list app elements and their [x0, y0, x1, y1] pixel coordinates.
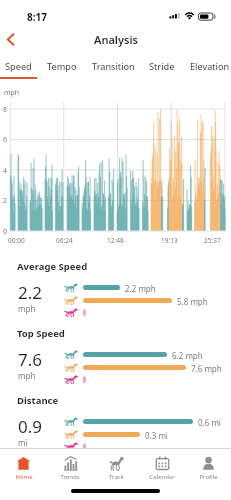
- staticText: Tempo: [47, 60, 77, 73]
- staticText: Calendar: [149, 473, 175, 481]
- staticText: Elevation: [190, 60, 230, 73]
- staticText: 6: [3, 135, 8, 145]
- button[interactable]: Trends: [47, 456, 93, 481]
- button[interactable]: Elevation: [186, 57, 231, 76]
- staticText: 19:13: [161, 236, 178, 245]
- staticText: 06:24: [56, 236, 73, 245]
- staticText: 0.6 mi: [198, 417, 221, 428]
- staticText: 7.6 mph: [191, 363, 222, 374]
- button[interactable]: Profile: [185, 456, 231, 481]
- staticText: Profile: [199, 473, 218, 481]
- button[interactable]: Calendar: [139, 456, 185, 481]
- staticText: 8: [3, 105, 8, 115]
- button[interactable]: Transition: [88, 57, 139, 76]
- staticText: mi: [18, 437, 28, 448]
- button[interactable]: Track: [93, 456, 139, 481]
- staticText: 2.2 mph: [125, 283, 156, 294]
- staticText: Home: [15, 473, 33, 481]
- staticText: 6.2 mph: [172, 350, 203, 361]
- staticText: 5.8 mph: [177, 296, 208, 307]
- staticText: Trends: [60, 473, 80, 481]
- staticText: Average Speed: [17, 260, 88, 273]
- staticText: 2.2: [18, 281, 43, 304]
- staticText: mph: [18, 370, 36, 381]
- staticText: 2: [3, 196, 8, 206]
- staticText: Stride: [149, 60, 175, 73]
- button[interactable]: Tempo: [43, 57, 81, 76]
- staticText: 7.6: [18, 348, 43, 371]
- staticText: Top Speed: [17, 327, 65, 340]
- button[interactable]: Stride: [145, 57, 179, 76]
- staticText: Analysis: [94, 32, 138, 47]
- staticText: Speed: [5, 60, 32, 73]
- staticText: 4: [3, 166, 8, 176]
- button[interactable]: Speed: [0, 57, 36, 76]
- staticText: 8:17: [27, 10, 47, 24]
- staticText: 00:00: [8, 236, 25, 245]
- staticText: 0.9: [18, 415, 43, 438]
- staticText: Track: [109, 473, 124, 481]
- button[interactable]: Back: [0, 29, 20, 49]
- staticText: mph: [4, 88, 20, 98]
- staticText: 0.3 mi: [145, 430, 168, 441]
- staticText: 25:37: [204, 236, 221, 245]
- button[interactable]: Home: [0, 456, 47, 481]
- staticText: 12:48: [107, 236, 124, 245]
- staticText: mph: [18, 303, 36, 314]
- staticText: Transition: [92, 60, 135, 73]
- staticText: Distance: [17, 394, 59, 407]
- staticText: 0: [3, 227, 8, 237]
